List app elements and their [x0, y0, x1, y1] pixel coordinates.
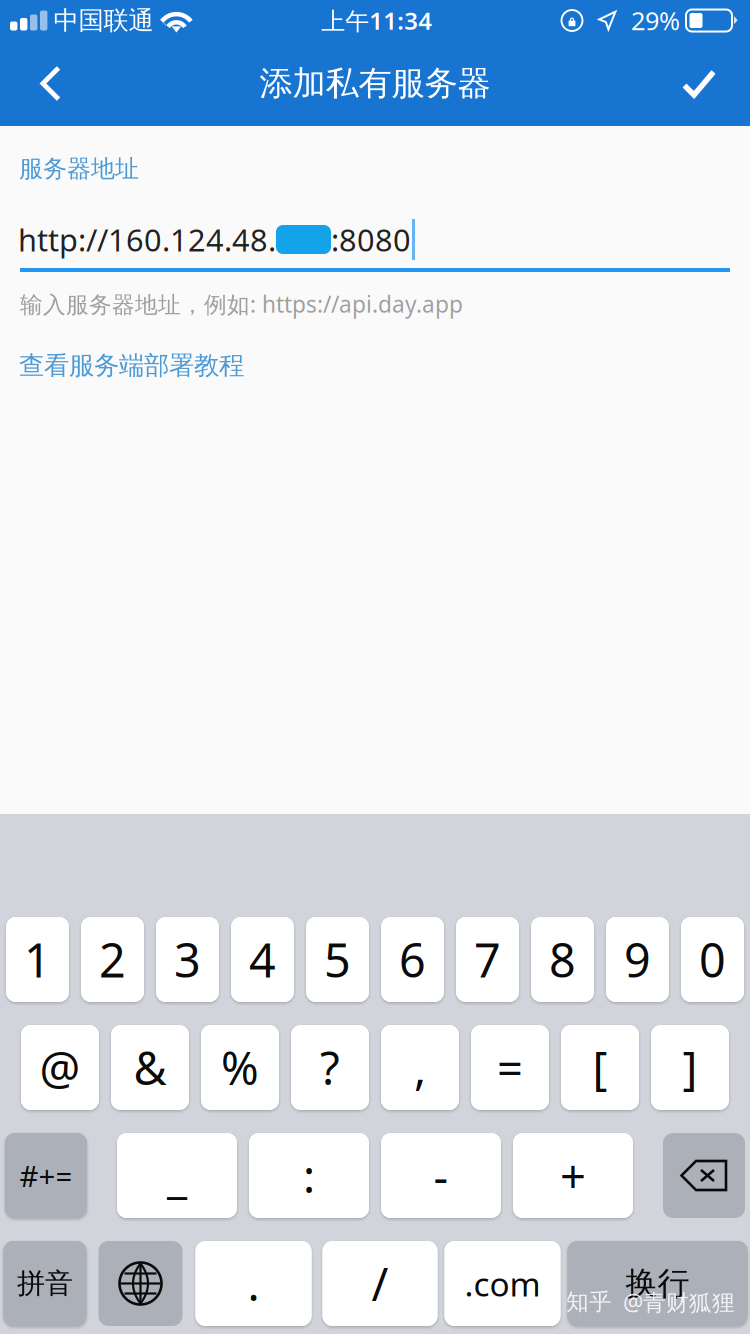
staticText: ?	[320, 1037, 340, 1098]
staticText: 输入服务器地址，例如: https://api.day.app	[20, 289, 463, 319]
staticText: %	[221, 1037, 259, 1098]
staticText: :8080	[331, 219, 411, 260]
staticText: 1	[24, 928, 51, 990]
button[interactable]: Switch keyboard	[98, 1241, 182, 1326]
button[interactable]: .com	[444, 1241, 560, 1326]
staticText: 服务器地址	[19, 154, 139, 183]
staticText: 29%	[631, 4, 680, 37]
staticText: 0	[699, 928, 726, 990]
staticText: 查看服务端部署教程	[19, 350, 244, 381]
staticText: 2	[99, 928, 126, 990]
button[interactable]: ?	[291, 1025, 369, 1110]
button[interactable]: /	[322, 1241, 437, 1326]
button[interactable]: ]	[651, 1025, 729, 1110]
button[interactable]: 7	[456, 917, 519, 1002]
button[interactable]: _	[117, 1133, 237, 1218]
button[interactable]: 6	[381, 917, 444, 1002]
staticText: 中国联通	[53, 5, 153, 36]
button[interactable]: =	[471, 1025, 549, 1110]
staticText: &	[133, 1037, 166, 1098]
button[interactable]: Done	[648, 41, 750, 126]
staticText: 9	[624, 928, 651, 990]
staticText: .com	[464, 1261, 540, 1306]
staticText: [	[592, 1037, 607, 1098]
staticText: 换行	[625, 1264, 689, 1303]
staticText: 7	[474, 928, 501, 990]
staticText: 6	[399, 928, 426, 990]
button[interactable]: 拼音	[3, 1241, 86, 1326]
staticText: http://160.124.48.	[18, 219, 276, 260]
button[interactable]: 5	[306, 917, 369, 1002]
staticText: @	[39, 1037, 80, 1098]
button[interactable]: %	[201, 1025, 279, 1110]
button[interactable]: +	[513, 1133, 633, 1218]
button[interactable]: [	[561, 1025, 639, 1110]
button[interactable]: Back	[0, 41, 102, 126]
button[interactable]: @	[21, 1025, 99, 1110]
button[interactable]: 9	[606, 917, 669, 1002]
button[interactable]: 8	[531, 917, 594, 1002]
staticText: -	[433, 1145, 448, 1206]
staticText: 5	[324, 928, 351, 990]
button[interactable]: 换行	[567, 1241, 747, 1326]
staticText: ]	[682, 1037, 697, 1098]
button[interactable]: 0	[681, 917, 744, 1002]
staticText: 3	[174, 928, 201, 990]
button[interactable]: &	[111, 1025, 189, 1110]
staticText: 8	[549, 928, 576, 990]
staticText: 知乎	[566, 1288, 612, 1316]
staticText: /	[371, 1253, 388, 1314]
button[interactable]: -	[381, 1133, 501, 1218]
button[interactable]: :	[249, 1133, 369, 1218]
button[interactable]: 3	[156, 917, 219, 1002]
button[interactable]: 4	[231, 917, 294, 1002]
button[interactable]: #+=	[5, 1133, 87, 1218]
staticText: +	[560, 1145, 586, 1206]
staticText: .	[247, 1253, 259, 1314]
staticText: _	[167, 1145, 187, 1206]
button[interactable]: ,	[381, 1025, 459, 1110]
staticText: 拼音	[17, 1266, 73, 1301]
staticText: 添加私有服务器	[259, 63, 490, 104]
staticText: 上午11:34	[321, 5, 432, 36]
button[interactable]: .	[195, 1241, 311, 1326]
staticText: #+=	[19, 1156, 72, 1195]
button[interactable]: 1	[6, 917, 69, 1002]
button[interactable]: 2	[81, 917, 144, 1002]
staticText: 4	[249, 928, 276, 990]
staticText: @青财狐狸	[623, 1287, 735, 1317]
staticText: ,	[414, 1037, 426, 1098]
button[interactable]: 查看服务端部署教程	[0, 342, 264, 389]
staticText: :	[303, 1145, 315, 1206]
staticText: =	[497, 1037, 523, 1098]
button[interactable]: Delete	[663, 1133, 745, 1218]
